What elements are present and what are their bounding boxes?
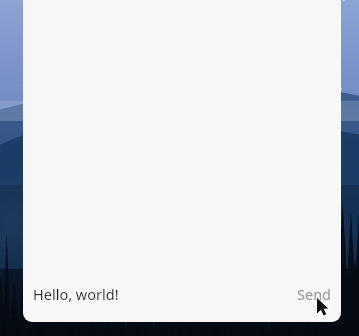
other: Pointer xyxy=(0,0,359,336)
button[interactable]: Send xyxy=(297,284,332,304)
staticText: Send xyxy=(297,284,332,304)
button[interactable]: Hello, world! xyxy=(33,284,119,304)
staticText: Hello, world! xyxy=(33,284,119,304)
